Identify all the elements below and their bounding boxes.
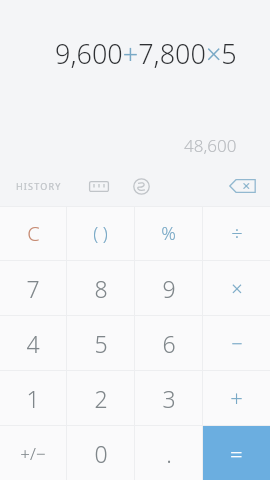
button[interactable]: % (135, 207, 202, 260)
staticText: 2 (94, 383, 108, 414)
button[interactable]: 3 (135, 371, 202, 425)
staticText: ÷ (231, 220, 243, 247)
button[interactable]: Backspace (224, 173, 260, 199)
button[interactable]: 7 (0, 261, 66, 315)
staticText: HISTORY (16, 180, 62, 192)
button[interactable]: C (0, 207, 66, 260)
staticText: % (161, 221, 176, 246)
staticText: − (231, 330, 243, 357)
button[interactable]: 1 (0, 371, 66, 425)
staticText: +/− (20, 442, 46, 465)
button[interactable]: + (203, 371, 270, 425)
button[interactable]: − (203, 316, 270, 370)
staticText: ( ) (93, 221, 108, 246)
staticText: 0 (94, 438, 108, 469)
staticText: × (231, 275, 243, 302)
button[interactable]: ÷ (203, 207, 270, 260)
button[interactable]: Currency converter (126, 172, 156, 200)
staticText: 9,600+7,800×5 (55, 35, 237, 72)
staticText: = (230, 438, 243, 468)
button[interactable]: × (203, 261, 270, 315)
button[interactable]: +/− (0, 426, 66, 480)
button[interactable]: 6 (135, 316, 202, 370)
button[interactable]: 4 (0, 316, 66, 370)
staticText: 7 (26, 273, 40, 304)
button[interactable]: . (135, 426, 202, 480)
button[interactable]: 8 (67, 261, 134, 315)
staticText: C (27, 220, 40, 247)
button[interactable]: = (203, 426, 270, 480)
button[interactable]: HISTORY (10, 174, 68, 198)
staticText: 4 (26, 328, 40, 359)
button[interactable]: 2 (67, 371, 134, 425)
button[interactable]: 5 (67, 316, 134, 370)
staticText: + (230, 383, 243, 413)
staticText: 8 (94, 273, 108, 304)
staticText: 3 (162, 383, 176, 414)
staticText: 48,600 (184, 134, 237, 157)
staticText: . (166, 438, 172, 469)
staticText: 6 (162, 328, 176, 359)
staticText: 1 (26, 383, 40, 414)
button[interactable]: 9 (135, 261, 202, 315)
staticText: 9 (162, 273, 176, 304)
button[interactable]: 0 (67, 426, 134, 480)
button[interactable]: Unit converter (84, 172, 114, 200)
button[interactable]: ( ) (67, 207, 134, 260)
staticText: 5 (94, 328, 108, 359)
